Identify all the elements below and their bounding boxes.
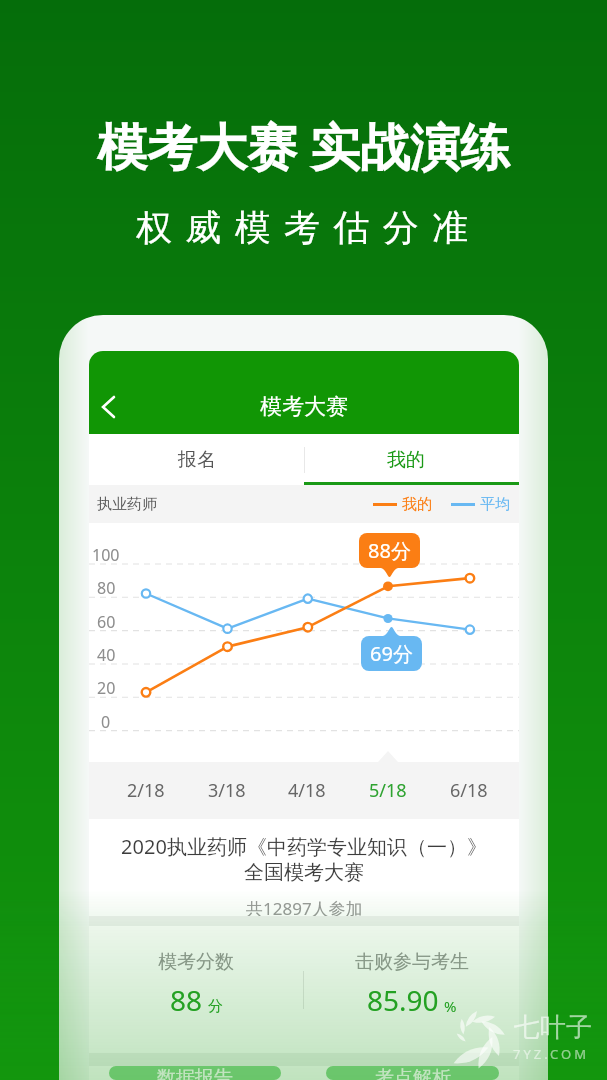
button[interactable]: 考点解析 — [326, 1066, 499, 1080]
staticText: 我的 — [402, 495, 432, 514]
button[interactable]: 我的 — [304, 434, 507, 485]
staticText: 报名 — [178, 448, 216, 472]
staticText: 4/18 — [288, 778, 326, 803]
button[interactable]: Back — [89, 380, 130, 434]
staticText: 20 — [97, 677, 116, 697]
button[interactable]: 模考分数 — [89, 926, 303, 1053]
staticText: 80 — [97, 577, 116, 597]
staticText: 模考大赛 — [260, 393, 348, 421]
staticText: 执业药师 — [97, 495, 157, 514]
staticText: 权 威 模 考 估 分 准 — [136, 202, 471, 251]
staticText: 85.90 — [367, 981, 439, 1019]
staticText: 2/18 — [127, 778, 165, 803]
staticText: 击败参与考生 — [355, 950, 469, 974]
staticText: 40 — [97, 644, 116, 664]
staticText: 5/18 — [369, 778, 407, 803]
staticText: 共12897人参加 — [246, 897, 363, 916]
staticText: 69分 — [370, 640, 413, 667]
staticText: 平均 — [480, 495, 510, 514]
button[interactable]: 6/18 — [433, 762, 505, 819]
staticText: 数据报告 — [157, 1066, 233, 1080]
button[interactable]: 5/18 — [352, 762, 424, 819]
staticText: 7YZ.COM — [513, 1045, 589, 1063]
staticText: 考点解析 — [375, 1066, 451, 1080]
staticText: 模考分数 — [158, 950, 234, 974]
staticText: 100 — [92, 544, 120, 564]
staticText: 2020执业药师《中药学专业知识（一）》 全国模考大赛 — [121, 833, 487, 885]
staticText: 七叶子 — [514, 1011, 592, 1044]
button[interactable]: 击败参与考生 — [304, 926, 519, 1053]
button[interactable]: 4/18 — [271, 762, 343, 819]
staticText: 3/18 — [208, 778, 246, 803]
staticText: 6/18 — [450, 778, 488, 803]
button[interactable]: 3/18 — [191, 762, 263, 819]
staticText: 60 — [97, 611, 116, 631]
button[interactable]: 数据报告 — [109, 1066, 281, 1080]
staticText: % — [444, 996, 457, 1016]
staticText: 88 — [170, 981, 203, 1019]
staticText: 我的 — [387, 448, 425, 472]
button[interactable]: 2/18 — [110, 762, 182, 819]
staticText: 0 — [101, 711, 111, 731]
staticText: 分 — [208, 997, 223, 1016]
staticText: 模考大赛 实战演练 — [97, 112, 510, 180]
staticText: 88分 — [368, 537, 411, 564]
button[interactable]: 报名 — [89, 434, 304, 485]
